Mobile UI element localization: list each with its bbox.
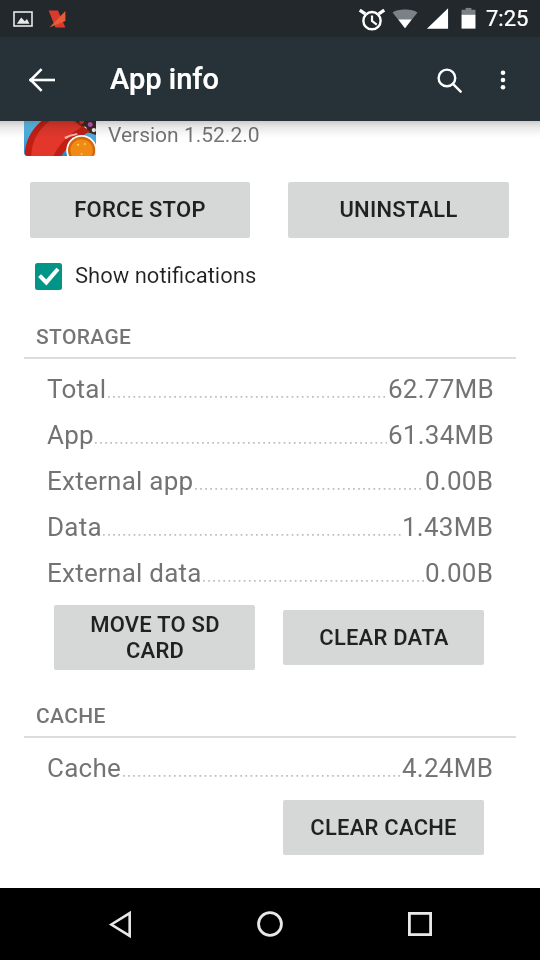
staticText: CLEAR DATA [319,625,449,651]
staticText: Total [47,374,107,404]
staticText: 0.00B [425,466,494,496]
button[interactable]: More options [475,52,531,108]
staticText: FORCE STOP [74,197,206,223]
button[interactable]: Data [47,504,494,550]
button[interactable]: External data [47,550,494,596]
button[interactable]: App [47,412,494,458]
button[interactable]: External app [47,458,494,504]
staticText: Data [47,512,102,542]
staticText: Show notifications [75,263,257,289]
staticText: 0.00B [425,558,494,588]
staticText: Version 1.52.2.0 [108,123,260,148]
button[interactable]: Cache [47,745,494,791]
staticText: Cache [47,753,122,783]
staticText: CACHE [36,704,106,729]
button[interactable]: FORCE STOP [30,182,250,238]
button[interactable]: Total [47,366,494,412]
button[interactable]: Show notifications [24,255,257,297]
button[interactable]: Back [90,888,150,960]
staticText: External data [47,558,202,588]
staticText: 4.24MB [402,753,494,783]
button[interactable]: CLEAR CACHE [283,800,484,855]
button[interactable]: UNINSTALL [288,182,509,238]
staticText: MOVE TO SD CARD [90,612,220,664]
staticText: 62.77MB [388,374,494,404]
staticText: STORAGE [36,325,132,350]
staticText: App info [110,62,220,96]
button[interactable]: Recent apps [390,888,450,960]
staticText: 61.34MB [388,420,494,450]
staticText: App [47,420,94,450]
button[interactable]: Back [14,52,70,108]
staticText: 1.43MB [402,512,494,542]
staticText: 7:25 [486,6,529,32]
button[interactable]: Home [240,888,300,960]
staticText: UNINSTALL [339,197,458,223]
button[interactable]: MOVE TO SD CARD [54,605,255,670]
staticText: CLEAR CACHE [310,815,457,841]
staticText: External app [47,466,194,496]
button[interactable]: Search [421,52,477,108]
button[interactable]: CLEAR DATA [283,610,484,665]
